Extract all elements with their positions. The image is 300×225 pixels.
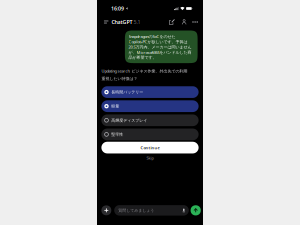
staticText: 高輝度ディスプレイ (111, 118, 147, 123)
button[interactable]: 長時間バッテリー (101, 86, 199, 98)
button[interactable]: 堅牢性 (101, 129, 199, 140)
staticText: 軽量 (111, 104, 119, 109)
button[interactable]: Send message (191, 205, 201, 216)
staticText: SnapdragonのSoCをのせたCopilot+PCが欲しいです。予算は20… (128, 34, 191, 60)
staticText: ChatGPT (111, 18, 132, 26)
staticText: 堅牢性 (111, 132, 123, 137)
staticText: Skip (146, 155, 153, 161)
button[interactable]: New chat (169, 17, 176, 26)
button[interactable]: Skip (101, 154, 199, 162)
button[interactable]: More options (192, 17, 199, 26)
staticText: 16:09 (111, 5, 124, 12)
button[interactable]: Continue (101, 142, 199, 153)
button[interactable]: 軽量 (101, 100, 199, 112)
button[interactable]: Sidebar (102, 17, 110, 26)
button[interactable]: 高輝度ディスプレイ (101, 114, 199, 126)
staticText: 質問してみましょう (118, 208, 154, 213)
staticText: Updating search: ビジネス作業、外出先での利用 (101, 68, 187, 74)
button[interactable]: Account (181, 17, 188, 26)
staticText: 5.1 (134, 18, 141, 26)
button[interactable]: Add attachment (101, 205, 111, 216)
staticText: 重視したい特徴は？ (101, 76, 137, 81)
staticText: Continue (140, 145, 159, 150)
staticText: 長時間バッテリー (111, 90, 143, 94)
